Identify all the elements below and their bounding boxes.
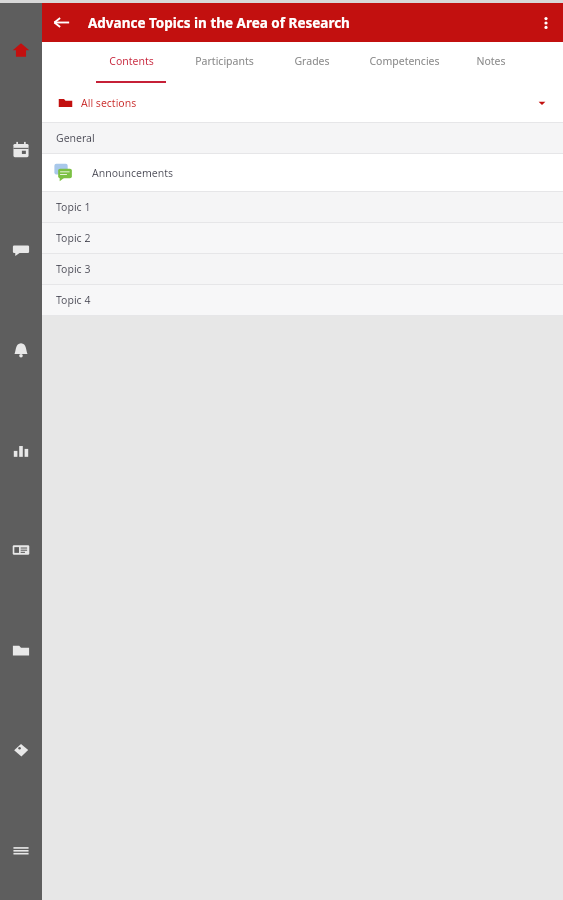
button[interactable]: More — [0, 836, 42, 864]
staticText: Topic 3 — [56, 262, 91, 276]
button[interactable]: Topic 4 — [42, 285, 563, 315]
staticText: Participants — [195, 54, 254, 68]
staticText: All sections — [81, 96, 137, 110]
button[interactable]: Reports — [0, 436, 42, 464]
staticText: Contents — [109, 54, 154, 68]
button[interactable]: Notes — [460, 42, 522, 83]
button[interactable]: Grades — [276, 42, 348, 83]
button[interactable]: Participants — [172, 42, 276, 83]
button[interactable]: Competencies — [348, 42, 460, 83]
staticText: Grades — [294, 54, 330, 68]
button[interactable]: Tags — [0, 736, 42, 764]
staticText: Competencies — [369, 54, 440, 68]
button[interactable]: Notifications — [0, 336, 42, 364]
staticText: Topic 1 — [56, 200, 91, 214]
staticText: Topic 2 — [56, 231, 91, 245]
staticText: Notes — [476, 54, 506, 68]
button[interactable]: Announcements — [42, 154, 563, 191]
button[interactable]: Topic 2 — [42, 223, 563, 253]
button[interactable]: Topic 1 — [42, 192, 563, 222]
button[interactable]: Badges — [0, 536, 42, 564]
staticText: Announcements — [92, 166, 174, 180]
staticText: Topic 4 — [56, 293, 91, 307]
button[interactable]: Back — [42, 3, 80, 42]
button[interactable]: More options — [529, 3, 563, 42]
button[interactable]: All sections — [50, 86, 555, 119]
button[interactable]: Home — [0, 36, 42, 64]
staticText: General — [56, 131, 95, 145]
button[interactable]: Calendar — [0, 136, 42, 164]
button[interactable]: Messages — [0, 236, 42, 264]
button[interactable]: Topic 3 — [42, 254, 563, 284]
button[interactable]: General — [42, 123, 563, 153]
staticText: Advance Topics in the Area of Research — [88, 14, 350, 32]
button[interactable]: Files — [0, 636, 42, 664]
button[interactable]: Contents — [90, 42, 172, 83]
